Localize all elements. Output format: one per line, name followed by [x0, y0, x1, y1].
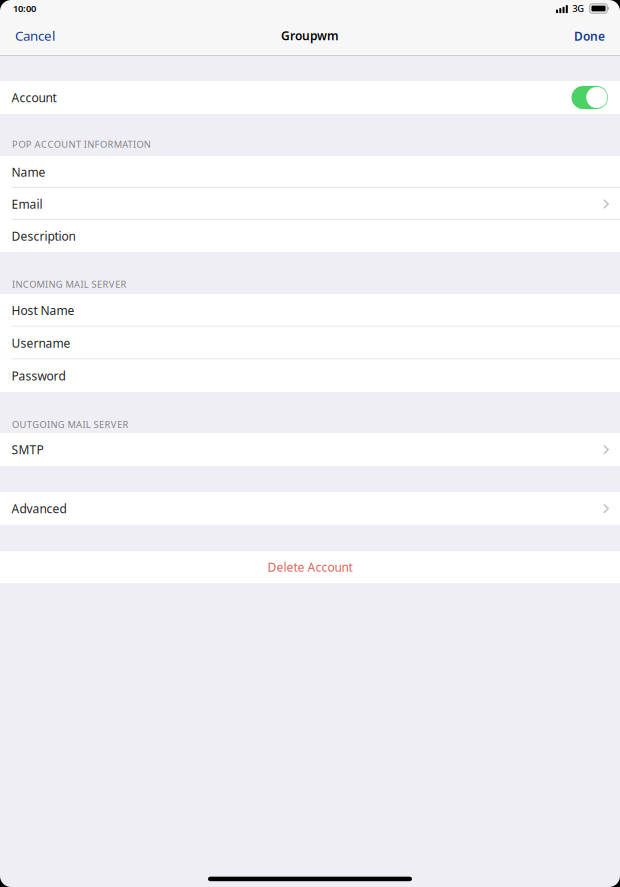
button[interactable]: Password: [0, 359, 620, 392]
button[interactable]: Done: [562, 23, 620, 47]
staticText: OUTGOING MAIL SERVER: [12, 418, 129, 430]
staticText: Done: [574, 28, 605, 44]
staticText: Username: [11, 335, 70, 351]
staticText: 10:00: [13, 2, 36, 15]
button[interactable]: Email: [0, 188, 620, 220]
button[interactable]: Advanced: [0, 492, 620, 525]
button[interactable]: Delete Account: [0, 551, 620, 583]
staticText: INCOMING MAIL SERVER: [12, 278, 127, 290]
staticText: 3G: [572, 2, 584, 15]
staticText: Email: [11, 196, 42, 212]
button[interactable]: Name: [0, 156, 620, 188]
staticText: SMTP: [11, 442, 43, 457]
staticText: Password: [11, 368, 65, 384]
button[interactable]: Host Name: [0, 294, 620, 327]
staticText: Advanced: [11, 501, 66, 516]
staticText: Name: [11, 164, 45, 180]
staticText: Cancel: [15, 27, 55, 44]
button[interactable]: Cancel: [0, 23, 67, 47]
staticText: POP ACCOUNT INFORMATION: [12, 138, 151, 150]
button[interactable]: SMTP: [0, 433, 620, 466]
button[interactable]: Username: [0, 327, 620, 359]
staticText: Groupwm: [281, 27, 339, 43]
button[interactable]: Description: [0, 220, 620, 252]
staticText: Delete Account: [267, 559, 352, 575]
button[interactable]: Account: [0, 81, 620, 114]
staticText: Host Name: [11, 302, 74, 318]
staticText: Description: [11, 228, 75, 244]
staticText: Account: [11, 89, 56, 105]
